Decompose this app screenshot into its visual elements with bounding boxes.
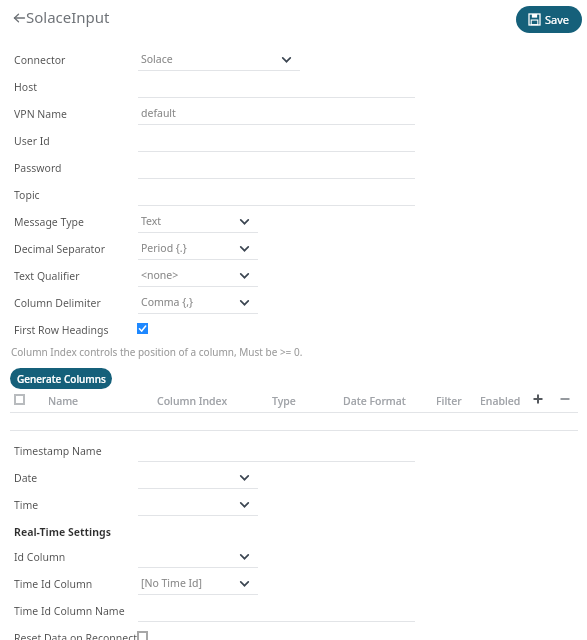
- staticText: Save: [545, 12, 570, 27]
- button[interactable]: Back: [8, 7, 30, 29]
- staticText: Name: [48, 394, 79, 408]
- staticText: Generate Columns: [17, 372, 106, 386]
- staticText: Real-Time Settings: [14, 525, 111, 539]
- staticText: Type: [272, 394, 296, 408]
- button[interactable]: Generate Columns: [10, 368, 112, 389]
- button[interactable]: Time: [0, 494, 587, 521]
- staticText: <none>: [141, 268, 179, 282]
- button[interactable]: Time Id Column: [0, 573, 587, 600]
- staticText: Column Index controls the position of a …: [11, 345, 303, 359]
- staticText: Comma {,}: [141, 295, 194, 309]
- staticText: Date: [14, 471, 38, 485]
- staticText: Reset Data on Reconnect: [14, 631, 138, 640]
- button[interactable]: Timestamp Name: [0, 440, 587, 467]
- button[interactable]: Time Id Column Name: [0, 600, 587, 627]
- staticText: User Id: [14, 134, 50, 148]
- staticText: Time Id Column Name: [14, 604, 125, 618]
- staticText: Id Column: [14, 550, 66, 564]
- staticText: Column Delimiter: [14, 296, 101, 310]
- button[interactable]: Decimal Separator: [0, 238, 587, 265]
- staticText: Time: [14, 498, 39, 512]
- button[interactable]: Remove column: [556, 390, 574, 408]
- staticText: VPN Name: [14, 107, 67, 121]
- button[interactable]: Host: [0, 76, 587, 103]
- staticText: Timestamp Name: [14, 444, 102, 458]
- button[interactable]: Add column: [529, 390, 547, 408]
- button[interactable]: Id Column: [0, 546, 587, 573]
- staticText: Text: [141, 214, 162, 228]
- staticText: Column Index: [157, 394, 228, 408]
- staticText: First Row Headings: [14, 323, 109, 337]
- button[interactable]: First Row Headings: [0, 319, 587, 346]
- staticText: Period {.}: [141, 241, 187, 255]
- button[interactable]: Password: [0, 157, 587, 184]
- staticText: [No Time Id]: [141, 576, 203, 590]
- staticText: Message Type: [14, 215, 84, 229]
- button[interactable]: Select all columns: [14, 394, 25, 405]
- staticText: Text Qualifier: [14, 269, 80, 283]
- staticText: default: [141, 106, 176, 120]
- button[interactable]: VPN Name: [0, 103, 587, 130]
- staticText: Host: [14, 80, 37, 94]
- staticText: Time Id Column: [14, 577, 93, 591]
- button[interactable]: User Id: [0, 130, 587, 157]
- staticText: Connector: [14, 53, 66, 67]
- button[interactable]: Connector: [0, 49, 587, 76]
- staticText: Solace: [141, 52, 173, 66]
- staticText: Filter: [436, 394, 462, 408]
- staticText: Password: [14, 161, 62, 175]
- button[interactable]: Topic: [0, 184, 587, 211]
- staticText: SolaceInput: [26, 7, 110, 27]
- staticText: Date Format: [343, 394, 406, 408]
- button[interactable]: Column Delimiter: [0, 292, 587, 319]
- button[interactable]: Text Qualifier: [0, 265, 587, 292]
- button[interactable]: Save: [516, 6, 582, 33]
- button[interactable]: Reset Data on Reconnect: [0, 627, 587, 640]
- button[interactable]: Message Type: [0, 211, 587, 238]
- staticText: Topic: [14, 188, 40, 202]
- staticText: Enabled: [480, 394, 521, 408]
- button[interactable]: Date: [0, 467, 587, 494]
- staticText: Decimal Separator: [14, 242, 106, 256]
